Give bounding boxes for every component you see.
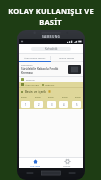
staticText: enerji (48, 96, 54, 99)
staticText: puanlar (26, 78, 35, 81)
button[interactable]: Ayarlar (51, 158, 83, 168)
button[interactable]: 4 (59, 101, 68, 108)
staticText: 3 (51, 103, 53, 107)
button[interactable]: Marka seçiniz (51, 54, 83, 61)
staticText: Kahvaltılık (45, 47, 58, 51)
button[interactable]: 2 (34, 101, 43, 108)
button[interactable]: Arama (31, 47, 71, 51)
staticText: enerji (75, 96, 81, 99)
staticText: Kahvaltılık (21, 63, 33, 66)
staticText: Marka seçiniz (59, 56, 75, 59)
staticText: 2 (38, 103, 40, 107)
staticText: 4 (63, 103, 65, 107)
staticText: enerji (35, 96, 41, 99)
staticText: KOLAY KULLANIŞLI VE (8, 6, 94, 16)
button[interactable]: 1 (21, 101, 30, 108)
staticText: Ayarlar (63, 165, 71, 168)
staticText: Ana Sayfa (30, 165, 41, 168)
staticText: Besin ve içerik (25, 90, 46, 94)
staticText: Ürün grubu seçiniz (24, 56, 46, 59)
button[interactable]: 3 (47, 101, 56, 108)
staticText: 1 (25, 103, 27, 107)
staticText: Ürün ile ilgili (25, 83, 40, 86)
button[interactable]: 5 (72, 101, 81, 108)
button[interactable]: Kahvaltılık (19, 62, 83, 76)
staticText: enerji (62, 96, 68, 99)
staticText: değerler (45, 83, 55, 86)
staticText: 5 (76, 103, 78, 107)
staticText: enerji (21, 96, 27, 99)
button[interactable]: Ürün grubu seçiniz (19, 54, 50, 61)
button[interactable]: Ana Sayfa (19, 158, 51, 168)
staticText: BASİT (39, 17, 62, 27)
staticText: SAMSUNG (42, 35, 61, 39)
staticText: Sürülebilir Kakaolu Fındık Kreması (21, 67, 66, 75)
